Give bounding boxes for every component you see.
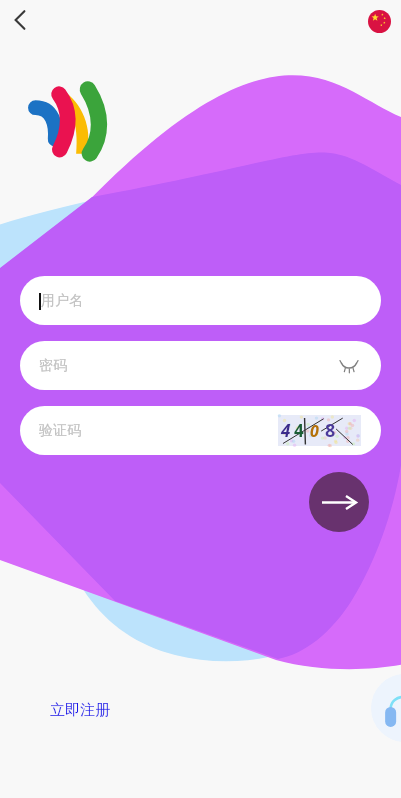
staticText: 密码 (39, 357, 67, 375)
button[interactable]: Show password (340, 357, 358, 375)
staticText: 验证码 (39, 422, 81, 440)
staticText: 4 (281, 419, 291, 442)
staticText: 用户名 (41, 292, 83, 310)
button[interactable]: 立即注册 (50, 701, 110, 720)
button[interactable]: Login (309, 472, 369, 532)
staticText: 4 (294, 419, 304, 442)
button[interactable]: 验证码 (20, 406, 381, 455)
button[interactable]: Refresh captcha (278, 415, 361, 446)
staticText: 8 (325, 418, 336, 443)
button[interactable]: Language (366, 8, 392, 34)
staticText: 0 (310, 420, 319, 442)
button[interactable]: 用户名 (20, 276, 381, 325)
button[interactable]: Back (0, 0, 40, 40)
staticText: 立即注册 (50, 701, 110, 720)
button[interactable]: 密码 (20, 341, 381, 390)
button[interactable]: Customer support (371, 674, 401, 742)
